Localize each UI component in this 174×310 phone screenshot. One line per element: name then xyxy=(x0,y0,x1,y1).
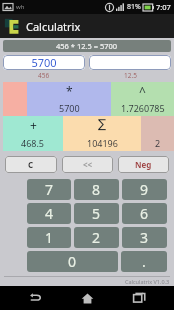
button[interactable]: 4 xyxy=(27,203,71,224)
staticText: ∑ xyxy=(98,117,107,131)
staticText: 104196 xyxy=(87,137,118,149)
staticText: Neg xyxy=(135,159,152,170)
button[interactable]: 3 xyxy=(122,227,167,248)
staticText: 12.5 xyxy=(124,71,137,80)
button[interactable]: operation xyxy=(111,82,174,116)
button[interactable]: Home xyxy=(70,286,104,310)
staticText: 6 xyxy=(140,204,149,223)
button[interactable]: 5 xyxy=(74,203,119,224)
staticText: 9 xyxy=(140,180,149,199)
staticText: Calculatrix V1.0.3 xyxy=(125,278,170,285)
other: App icon xyxy=(4,18,21,35)
staticText: . xyxy=(142,252,146,271)
button[interactable]: C xyxy=(5,156,57,173)
button[interactable]: 8 xyxy=(74,179,119,200)
button[interactable]: Recent apps xyxy=(122,286,156,310)
staticText: 2 xyxy=(92,228,101,247)
staticText: 5 xyxy=(92,204,101,223)
staticText: 81% xyxy=(127,2,141,12)
staticText: 5700 xyxy=(31,55,57,70)
button[interactable] xyxy=(89,55,171,70)
staticText: 456 * 12.5 = 5700 xyxy=(56,41,118,51)
button[interactable]: 0 xyxy=(27,251,118,272)
staticText: 3 xyxy=(140,228,149,247)
staticText: 0 xyxy=(68,252,77,271)
staticText: 1.7260785 xyxy=(121,102,165,114)
staticText: C xyxy=(28,159,34,170)
button[interactable]: App icon xyxy=(0,14,174,38)
button[interactable]: 9 xyxy=(122,179,167,200)
button[interactable]: 2 xyxy=(74,227,119,248)
button[interactable]: . xyxy=(121,251,167,272)
staticText: 4 xyxy=(45,204,54,223)
button[interactable]: operation xyxy=(63,116,141,151)
button[interactable]: << xyxy=(62,156,113,173)
button[interactable]: operation xyxy=(141,116,174,151)
button[interactable]: operation xyxy=(3,116,63,151)
staticText: * xyxy=(66,83,73,99)
button[interactable]: operation xyxy=(27,82,111,116)
button[interactable]: 1 xyxy=(27,227,71,248)
staticText: 7 xyxy=(45,180,54,199)
staticText: ^ xyxy=(139,83,146,99)
staticText: 2 xyxy=(155,137,161,149)
staticText: 1 xyxy=(45,228,54,247)
staticText: 468.5 xyxy=(21,137,45,149)
button[interactable]: Neg xyxy=(118,156,169,173)
staticText: << xyxy=(83,159,93,170)
button[interactable]: 7 xyxy=(27,179,71,200)
staticText: wh xyxy=(16,3,25,11)
button[interactable]: 456 * 12.5 = 5700 xyxy=(3,40,171,52)
staticText: 456 xyxy=(38,71,50,80)
staticText: 7:07 xyxy=(156,2,171,12)
button[interactable]: 5700 xyxy=(3,55,85,70)
button[interactable]: Back xyxy=(18,286,52,310)
staticText: Calculatrix xyxy=(26,19,81,34)
staticText: 8 xyxy=(92,180,101,199)
button[interactable]: 6 xyxy=(122,203,167,224)
staticText: 5700 xyxy=(59,102,80,114)
staticText: + xyxy=(30,117,37,133)
